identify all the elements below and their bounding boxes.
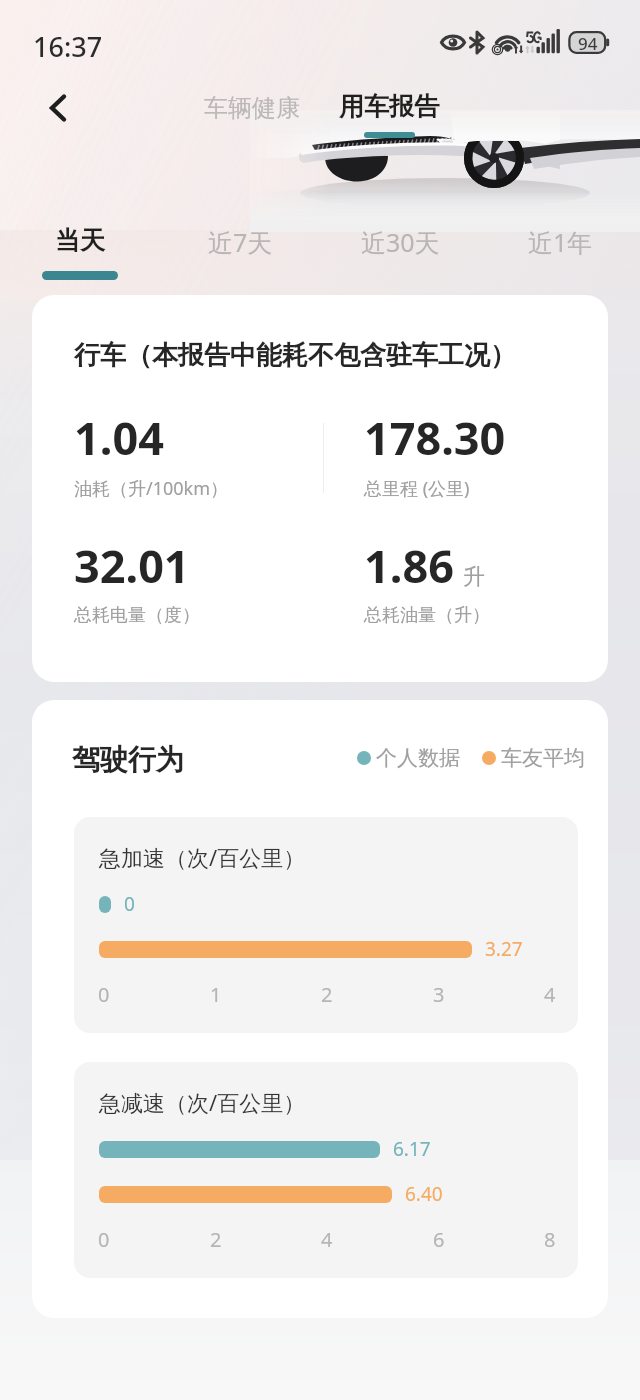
staticText: 行车（本报告中能耗不包含驻车工况） [74,339,516,372]
staticText: 油耗（升/100km） [74,476,229,501]
staticText: 0 [124,891,135,917]
staticText: 车友平均 [501,745,585,771]
staticText: 4 [321,1226,333,1253]
staticText: 6 [433,1226,445,1253]
button[interactable]: 用车报告 [329,87,449,142]
staticText: 驾驶行为 [72,742,184,777]
button[interactable]: 个人数据 [357,745,585,771]
staticText: 2 [321,981,333,1008]
staticText: 178.30 [364,407,506,468]
staticText: 1.04 [74,407,164,468]
button[interactable]: 近7天 [160,225,320,295]
staticText: 1 [210,981,222,1008]
staticText: 个人数据 [376,745,460,771]
staticText: 0 [98,1226,110,1253]
button[interactable]: 当天 [0,225,160,295]
staticText: 当天 [55,225,105,256]
staticText: 总耗油量（升） [364,604,490,627]
staticText: 近7天 [208,225,273,259]
staticText: 急减速（次/百公里） [99,1087,306,1117]
button[interactable]: 车辆健康 [204,93,300,123]
staticText: 总耗电量（度） [74,604,200,627]
button[interactable]: Back [30,80,86,136]
staticText: 1.86 [364,535,454,596]
button[interactable]: 近30天 [320,225,480,295]
staticText: 用车报告 [339,91,439,122]
staticText: 车辆健康 [204,93,300,123]
staticText: 6.40 [405,1181,443,1207]
staticText: 2 [210,1226,222,1253]
staticText: 3 [433,981,445,1008]
staticText: 总里程 (公里) [364,476,470,501]
staticText: 0 [98,981,110,1008]
staticText: 急加速（次/百公里） [99,842,306,872]
staticText: 94 [578,32,598,53]
staticText: 近30天 [361,225,440,259]
staticText: 6.17 [393,1136,431,1162]
staticText: 3.27 [485,936,523,962]
staticText: 近1年 [528,225,593,259]
staticText: 16:37 [33,28,103,65]
staticText: 8 [544,1226,556,1253]
staticText: 32.01 [74,535,190,596]
button[interactable]: 近1年 [480,225,640,295]
staticText: 4 [544,981,556,1008]
staticText: 升 [463,563,485,591]
